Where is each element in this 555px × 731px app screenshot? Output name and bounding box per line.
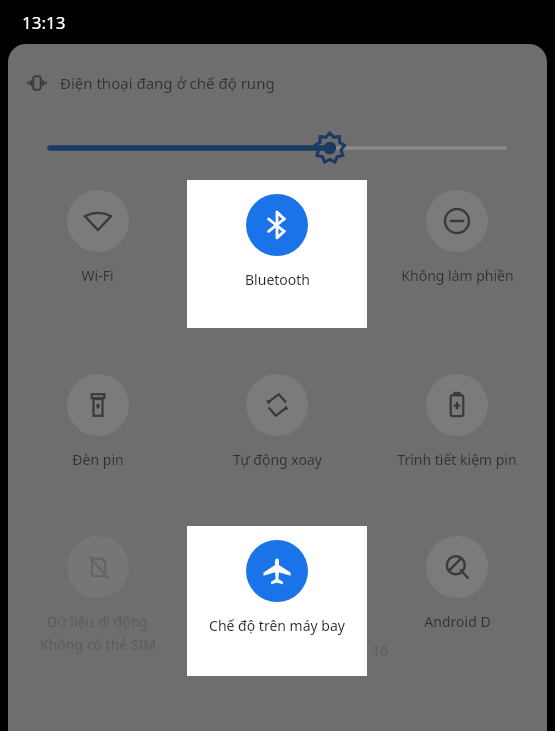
button[interactable]: Trình tiết kiệm pin: [367, 364, 547, 494]
staticText: 13:13: [22, 11, 66, 34]
staticText: Không làm phiền: [401, 266, 514, 285]
staticText: Wi-Fi: [81, 266, 114, 285]
staticText: Điện thoại đang ở chế độ rung: [60, 73, 275, 93]
staticText: Dữ liệu di động: [47, 612, 148, 631]
button[interactable]: Không làm phiền: [367, 180, 547, 328]
button[interactable]: Android D: [367, 526, 547, 676]
staticText: Chế độ trên máy bay: [209, 616, 345, 635]
button[interactable]: Bluetooth: [187, 180, 367, 328]
button[interactable]: Đèn pin: [8, 364, 187, 494]
staticText: Đèn pin: [72, 450, 124, 469]
button[interactable]: Chế độ trên máy bay: [187, 526, 367, 676]
staticText: Tự động xoay: [233, 450, 322, 469]
staticText: Android D: [424, 612, 491, 631]
staticText: Trình tiết kiệm pin: [397, 450, 517, 469]
button[interactable]: [50, 128, 505, 168]
button[interactable]: Wi-Fi: [8, 180, 187, 328]
staticText: Bluetooth: [245, 270, 310, 289]
button[interactable]: Dữ liệu di động: [8, 526, 187, 676]
button[interactable]: Tự động xoay: [187, 364, 367, 494]
staticText: Không có thẻ SIM: [40, 635, 156, 654]
staticText: 16: [372, 641, 389, 660]
